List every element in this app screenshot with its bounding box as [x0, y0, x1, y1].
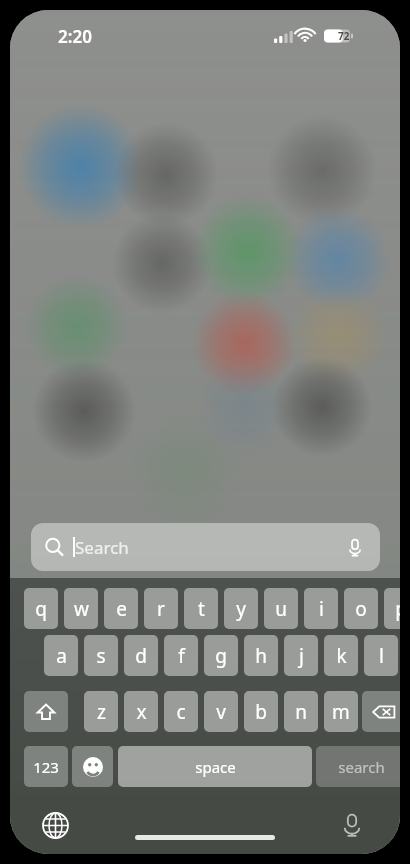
staticText: y	[236, 596, 246, 622]
staticText: d	[135, 643, 147, 669]
staticText: t	[198, 596, 205, 622]
button[interactable]: g	[204, 635, 238, 676]
button[interactable]: h	[244, 635, 278, 676]
staticText: space	[195, 757, 236, 777]
staticText: b	[255, 699, 267, 725]
button[interactable]: u	[264, 588, 298, 629]
staticText: w	[74, 596, 89, 622]
staticText: e	[116, 596, 127, 622]
button[interactable]: t	[184, 588, 218, 629]
button[interactable]: c	[164, 691, 198, 732]
button[interactable]: a	[44, 635, 78, 676]
staticText: a	[56, 643, 67, 669]
button[interactable]: Shift	[24, 691, 68, 732]
staticText: s	[96, 643, 106, 669]
button[interactable]: e	[104, 588, 138, 629]
staticText: h	[255, 643, 267, 669]
button[interactable]: Emoji	[72, 746, 113, 787]
button[interactable]: p	[384, 588, 400, 629]
button[interactable]: k	[324, 635, 358, 676]
button[interactable]: Backspace	[362, 691, 400, 732]
button[interactable]: b	[244, 691, 278, 732]
staticText: k	[336, 643, 347, 669]
button[interactable]: w	[64, 588, 98, 629]
button[interactable]: d	[124, 635, 158, 676]
staticText: q	[35, 596, 47, 622]
button[interactable]: o	[344, 588, 378, 629]
button[interactable]: y	[224, 588, 258, 629]
button[interactable]: Change keyboard language	[35, 805, 75, 845]
staticText: p	[395, 596, 400, 622]
button[interactable]: m	[324, 691, 358, 732]
button[interactable]: search	[316, 746, 400, 787]
button[interactable]: f	[164, 635, 198, 676]
staticText: j	[299, 643, 304, 669]
staticText: g	[215, 643, 227, 669]
button[interactable]: j	[284, 635, 318, 676]
button[interactable]: i	[304, 588, 338, 629]
button[interactable]: q	[24, 588, 58, 629]
staticText: i	[319, 596, 324, 622]
staticText: m	[332, 699, 350, 725]
button[interactable]: Search	[31, 523, 380, 571]
staticText: 2:20	[58, 25, 92, 48]
staticText: v	[216, 699, 226, 725]
button[interactable]: 123	[24, 746, 68, 787]
staticText: 123	[33, 757, 59, 777]
staticText: l	[379, 643, 384, 669]
button[interactable]: x	[124, 691, 158, 732]
staticText: c	[176, 699, 186, 725]
button[interactable]: s	[84, 635, 118, 676]
button[interactable]: l	[364, 635, 398, 676]
staticText: z	[97, 699, 106, 725]
staticText: f	[178, 643, 185, 669]
staticText: n	[295, 699, 307, 725]
button[interactable]: space	[118, 746, 312, 787]
staticText: r	[157, 596, 165, 622]
staticText: Search	[75, 536, 129, 559]
button[interactable]: v	[204, 691, 238, 732]
button[interactable]: Voice search	[338, 530, 372, 564]
staticText: x	[136, 699, 147, 725]
button[interactable]: Dictation	[332, 805, 372, 845]
staticText: 72	[338, 29, 350, 43]
button[interactable]: z	[84, 691, 118, 732]
button[interactable]: n	[284, 691, 318, 732]
staticText: o	[355, 596, 367, 622]
staticText: search	[338, 757, 385, 777]
staticText: u	[275, 596, 287, 622]
button[interactable]: r	[144, 588, 178, 629]
